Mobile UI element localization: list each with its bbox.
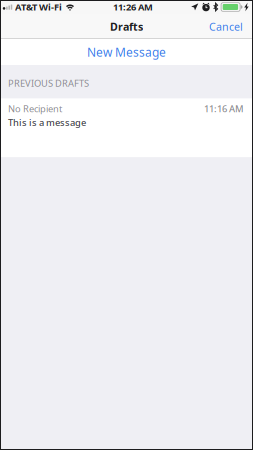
staticText: This is a message: [8, 116, 86, 129]
staticText: Cancel: [209, 19, 243, 34]
staticText: AT&T Wi-Fi: [15, 1, 62, 13]
staticText: New Message: [87, 44, 166, 60]
staticText: 11:26 AM: [113, 1, 153, 13]
button[interactable]: No Recipient: [0, 98, 253, 157]
button[interactable]: New Message: [0, 39, 253, 65]
staticText: 11:16 AM: [204, 102, 244, 115]
staticText: Drafts: [110, 19, 143, 34]
button[interactable]: Cancel: [199, 14, 253, 39]
staticText: PREVIOUS DRAFTS: [8, 77, 89, 89]
staticText: No Recipient: [8, 102, 62, 115]
